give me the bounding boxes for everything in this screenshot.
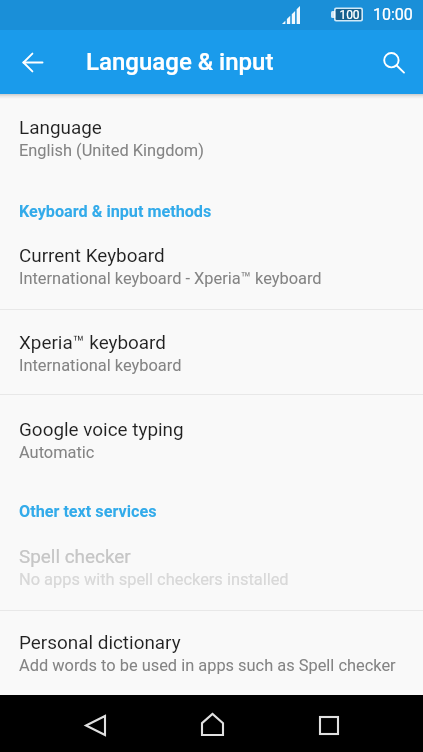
staticText: Add words to be used in apps such as Spe…	[19, 656, 396, 675]
staticText: Xperia™ keyboard	[19, 331, 167, 353]
staticText: Language	[19, 116, 102, 138]
staticText: English (United Kingdom)	[19, 141, 204, 160]
staticText: Personal dictionary	[19, 631, 181, 653]
staticText: International keyboard	[19, 356, 182, 375]
staticText: Google voice typing	[19, 418, 184, 440]
staticText: 10:00	[373, 5, 413, 24]
button[interactable]: Search	[370, 38, 418, 86]
button[interactable]: Recent apps	[294, 695, 364, 752]
staticText: Other text services	[19, 502, 157, 521]
button[interactable]: Home	[177, 695, 247, 752]
button[interactable]: Navigate up	[9, 38, 57, 86]
staticText: Language & input	[86, 48, 274, 76]
staticText: Automatic	[19, 443, 95, 462]
staticText: Spell checker	[19, 545, 131, 567]
staticText: No apps with spell checkers installed	[19, 570, 289, 589]
button[interactable]: Google voice typing	[0, 395, 423, 462]
button[interactable]: Xperia™ keyboard	[0, 310, 423, 394]
button[interactable]: Language	[0, 94, 423, 160]
button[interactable]: Spell checker	[0, 545, 423, 610]
staticText: Current Keyboard	[19, 244, 165, 266]
button[interactable]: Current Keyboard	[0, 244, 423, 309]
staticText: 100	[339, 8, 360, 22]
button[interactable]: Personal dictionary	[0, 611, 423, 675]
staticText: Keyboard & input methods	[19, 202, 212, 221]
staticText: International keyboard - Xperia™ keyboar…	[19, 269, 322, 288]
button[interactable]: Back	[60, 695, 130, 752]
